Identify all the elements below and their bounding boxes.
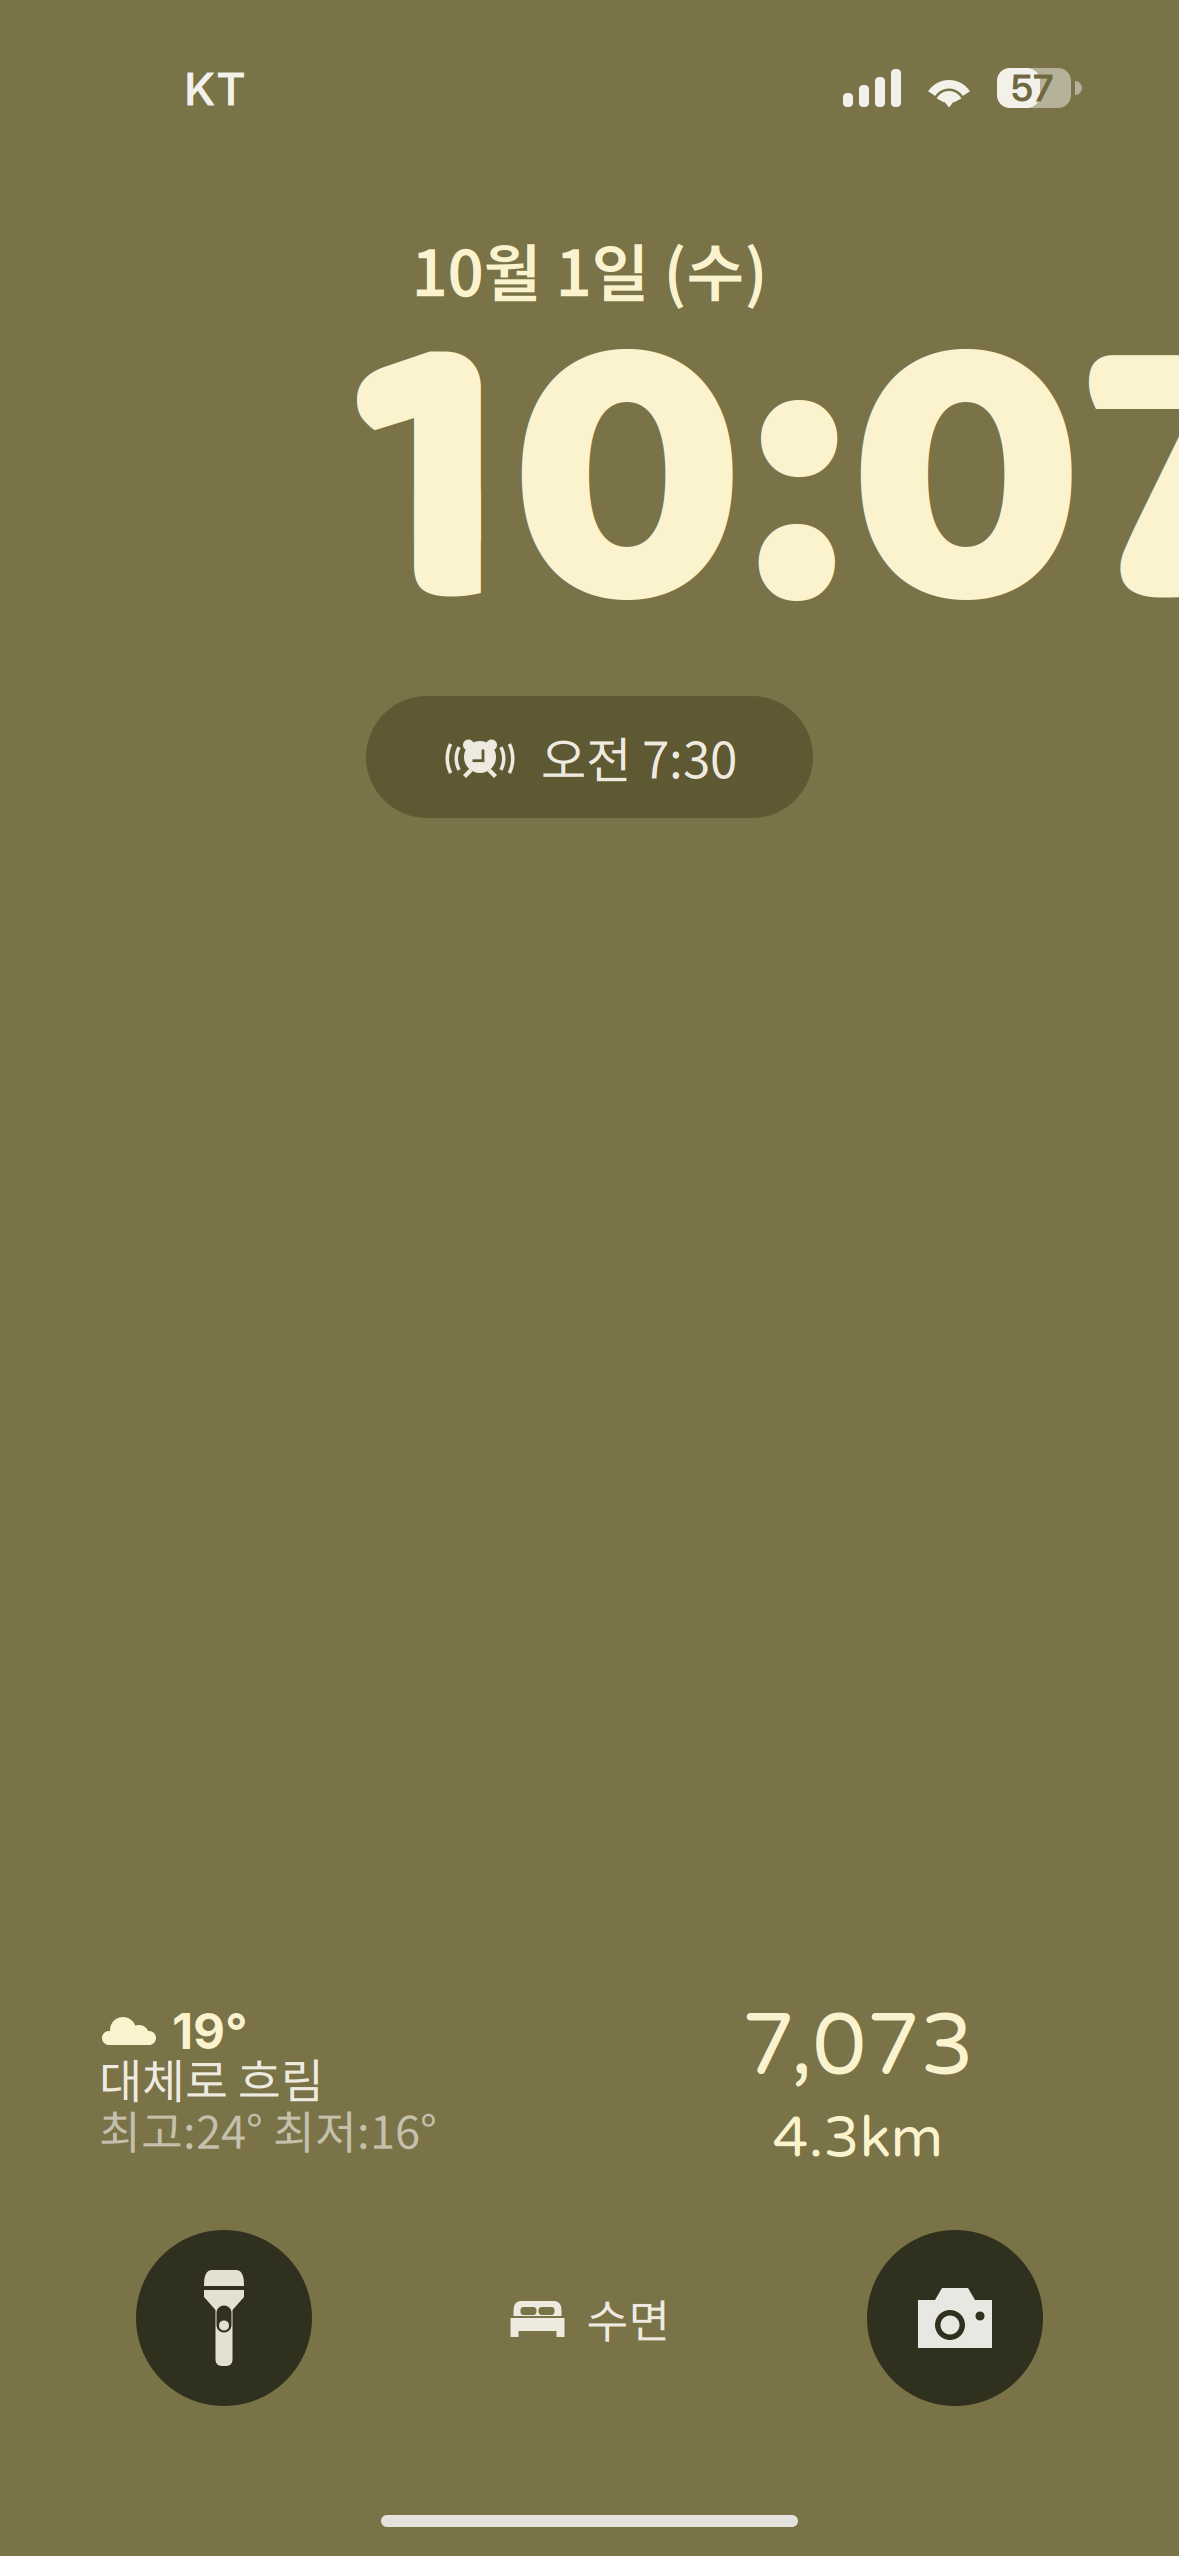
button[interactable]: 오전 7:30 [366,696,813,818]
staticText: 대체로 흐림 [99,2044,324,2112]
button[interactable]: 7,073 [693,1995,1023,2173]
staticText: 7,073 [741,1995,974,2098]
button[interactable]: Camera [867,2230,1043,2406]
staticText: KT [184,62,246,116]
staticText: 10:07 [353,170,1179,800]
button[interactable]: 19° [99,2010,437,2154]
button[interactable]: Flashlight [136,2230,312,2406]
staticText: 오전 7:30 [541,721,737,793]
staticText: 수면 [586,2285,670,2351]
staticText: 19° [172,2001,248,2061]
staticText: 10월 1일 (수) [411,224,767,314]
staticText: 최고:24° 최저:16° [99,2096,437,2162]
staticText: 57 [1011,65,1053,111]
staticText: 4.3km [772,2104,943,2173]
button[interactable]: 수면 [459,2268,719,2368]
